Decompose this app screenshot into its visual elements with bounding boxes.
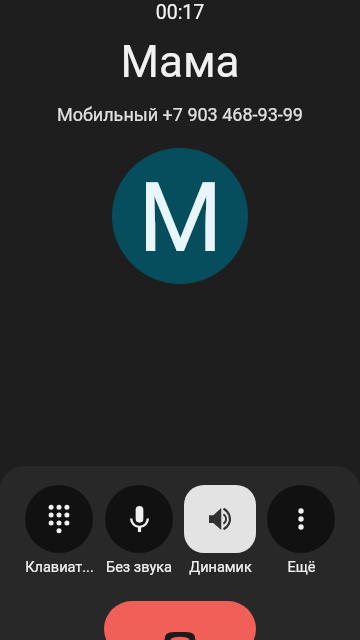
button[interactable]: End call (104, 601, 256, 640)
staticText: Без звука (106, 559, 172, 576)
staticText: Ещё (287, 559, 316, 576)
button[interactable]: Mute (89, 485, 189, 576)
staticText: M (138, 161, 223, 275)
other: Keypad (25, 485, 93, 553)
other: More (267, 485, 335, 553)
other: Speaker (184, 485, 256, 553)
other: Mute (105, 485, 173, 553)
button[interactable]: Keypad (9, 485, 109, 576)
staticText: Динамик (189, 559, 252, 576)
button[interactable]: Speaker (170, 485, 270, 576)
staticText: Мобильный +7 903 468-93-99 (0, 104, 360, 125)
staticText: 00:17 (0, 1, 360, 24)
staticText: Клавиат... (25, 559, 94, 576)
staticText: Мама (0, 36, 360, 88)
button[interactable]: More (251, 485, 351, 576)
